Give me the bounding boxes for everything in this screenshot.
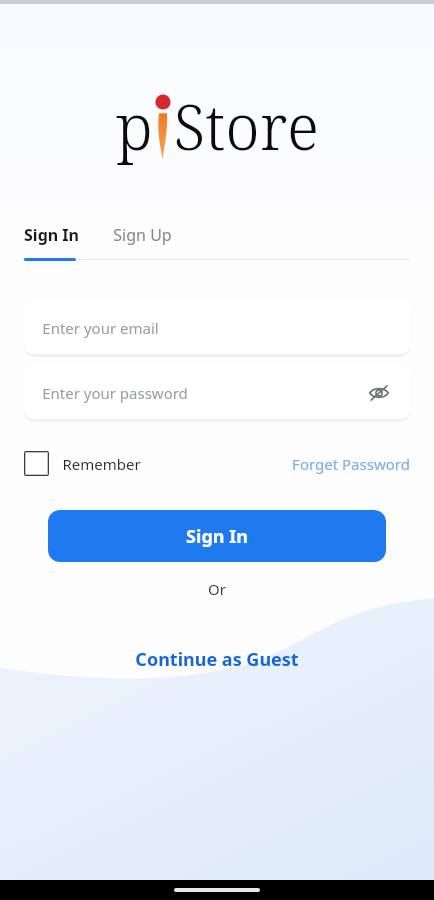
button[interactable]: Sign Up <box>113 224 172 252</box>
staticText: p <box>116 84 153 168</box>
button[interactable]: Show password <box>364 378 394 408</box>
button[interactable]: Enter your password <box>24 366 410 419</box>
staticText: Enter your password <box>42 383 188 403</box>
button[interactable]: Enter your email <box>24 301 410 354</box>
staticText: Or <box>208 579 226 599</box>
staticText: Sign Up <box>113 224 172 246</box>
staticText: Sign In <box>186 524 248 549</box>
staticText: Store <box>173 84 319 168</box>
button[interactable]: Remember <box>24 445 141 482</box>
staticText: Sign In <box>24 224 79 246</box>
staticText: Remember <box>62 454 141 474</box>
staticText: Continue as Guest <box>135 647 299 672</box>
staticText: Enter your email <box>42 318 159 338</box>
button[interactable]: Forget Password <box>292 448 410 480</box>
button[interactable]: Continue as Guest <box>115 639 319 680</box>
button[interactable]: Sign In <box>48 510 386 562</box>
staticText: Forget Password <box>292 454 410 474</box>
button[interactable]: Sign In <box>24 224 85 252</box>
